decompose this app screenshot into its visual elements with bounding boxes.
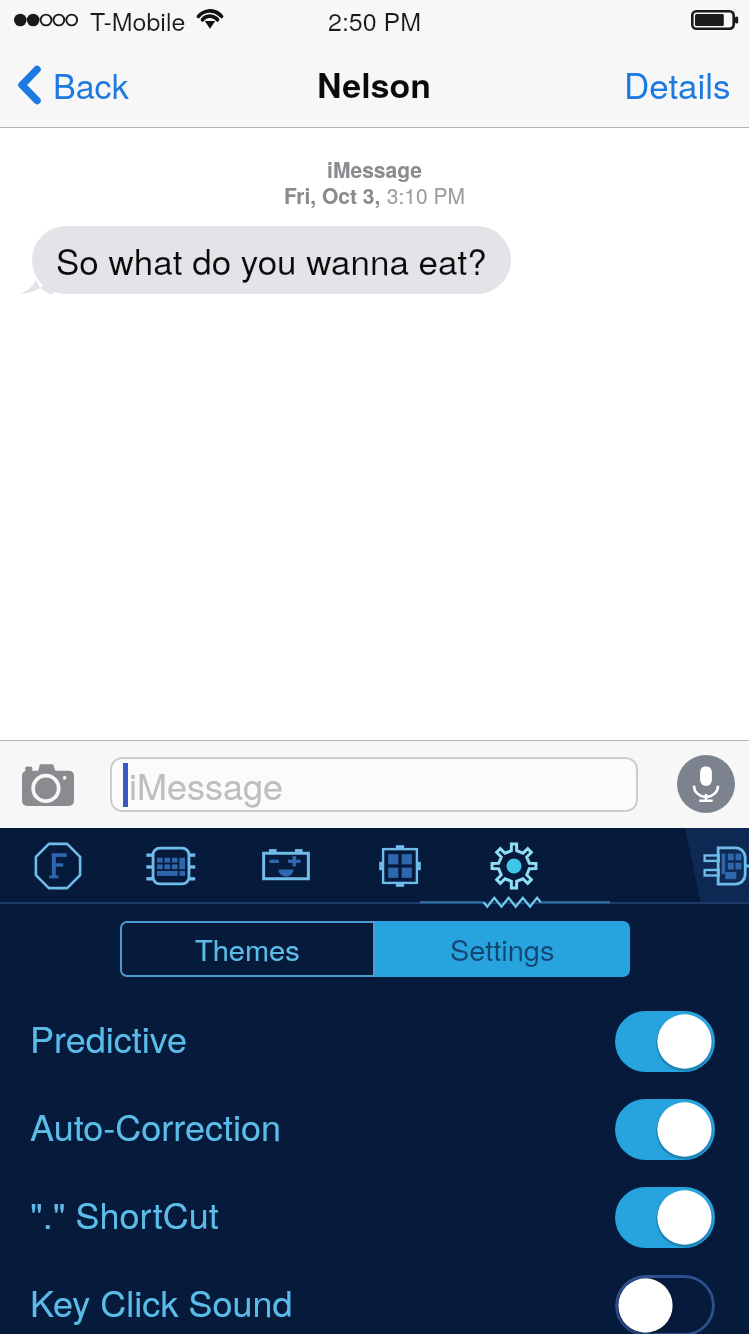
button[interactable]: Settings: [477, 828, 551, 903]
staticText: Fri, Oct 3,: [284, 180, 381, 210]
button[interactable]: Camera: [8, 748, 88, 820]
button[interactable]: Extensions: [690, 828, 749, 903]
staticText: "." ShortCut: [30, 1188, 219, 1240]
staticText: Back: [53, 60, 129, 109]
button[interactable]: Predictive: [0, 997, 749, 1085]
staticText: Key Click Sound: [30, 1276, 293, 1328]
staticText: T-Mobile: [90, 2, 186, 38]
button[interactable]: Themes: [120, 921, 375, 977]
button[interactable]: So what do you wanna eat?: [32, 226, 511, 294]
staticText: Predictive: [30, 1012, 187, 1064]
button[interactable]: Keyboard: [134, 828, 208, 903]
staticText: iMessage: [0, 154, 749, 184]
button[interactable]: Settings: [375, 921, 630, 977]
staticText: Themes: [195, 928, 300, 970]
staticText: iMessage: [129, 759, 284, 811]
button[interactable]: Key Click Sound: [0, 1261, 749, 1334]
staticText: Nelson: [317, 60, 432, 109]
button[interactable]: Back: [0, 46, 143, 123]
staticText: Settings: [450, 928, 555, 970]
button[interactable]: Layout: [363, 828, 437, 903]
button[interactable]: Fleksy: [21, 828, 95, 903]
button[interactable]: Auto-Correction: [0, 1085, 749, 1173]
button[interactable]: iMessage: [110, 757, 638, 812]
button[interactable]: Details: [606, 43, 749, 125]
button[interactable]: "." ShortCut: [0, 1173, 749, 1261]
staticText: So what do you wanna eat?: [56, 235, 487, 285]
button[interactable]: Battery: [249, 828, 323, 903]
staticText: Auto-Correction: [30, 1100, 281, 1152]
staticText: 3:10 PM: [381, 180, 466, 210]
button[interactable]: Voice message: [677, 755, 735, 813]
staticText: 2:50 PM: [328, 2, 422, 38]
